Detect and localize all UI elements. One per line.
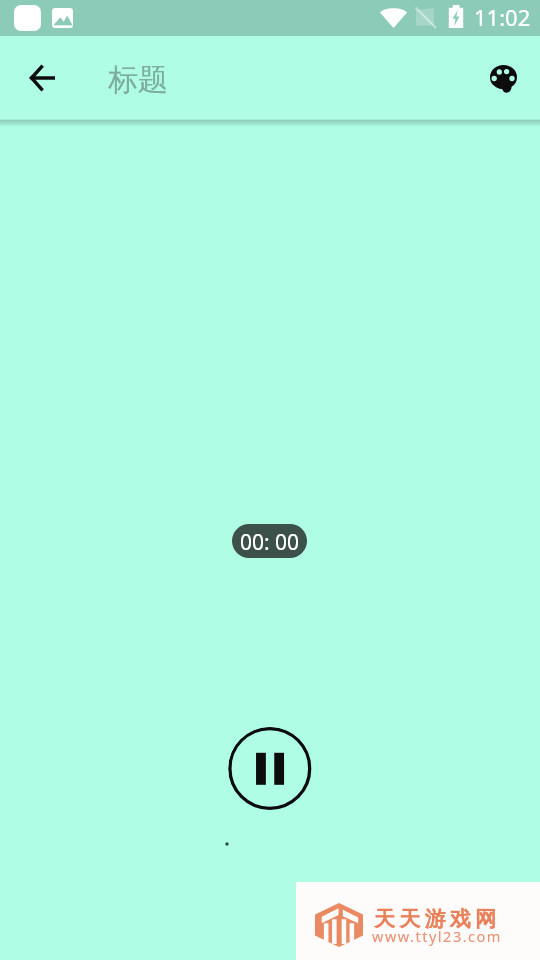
staticText: www.ttyl23.com	[372, 926, 502, 946]
staticText: 标题	[108, 61, 168, 99]
button[interactable]: Theme	[479, 54, 527, 102]
button[interactable]: Pause	[228, 727, 312, 811]
staticText: 00: 00	[240, 528, 300, 557]
staticText: 天天游戏网	[372, 906, 498, 932]
button[interactable]: Back	[18, 54, 66, 102]
button[interactable]: 00: 00	[232, 524, 307, 558]
staticText: 11:02	[474, 2, 531, 32]
